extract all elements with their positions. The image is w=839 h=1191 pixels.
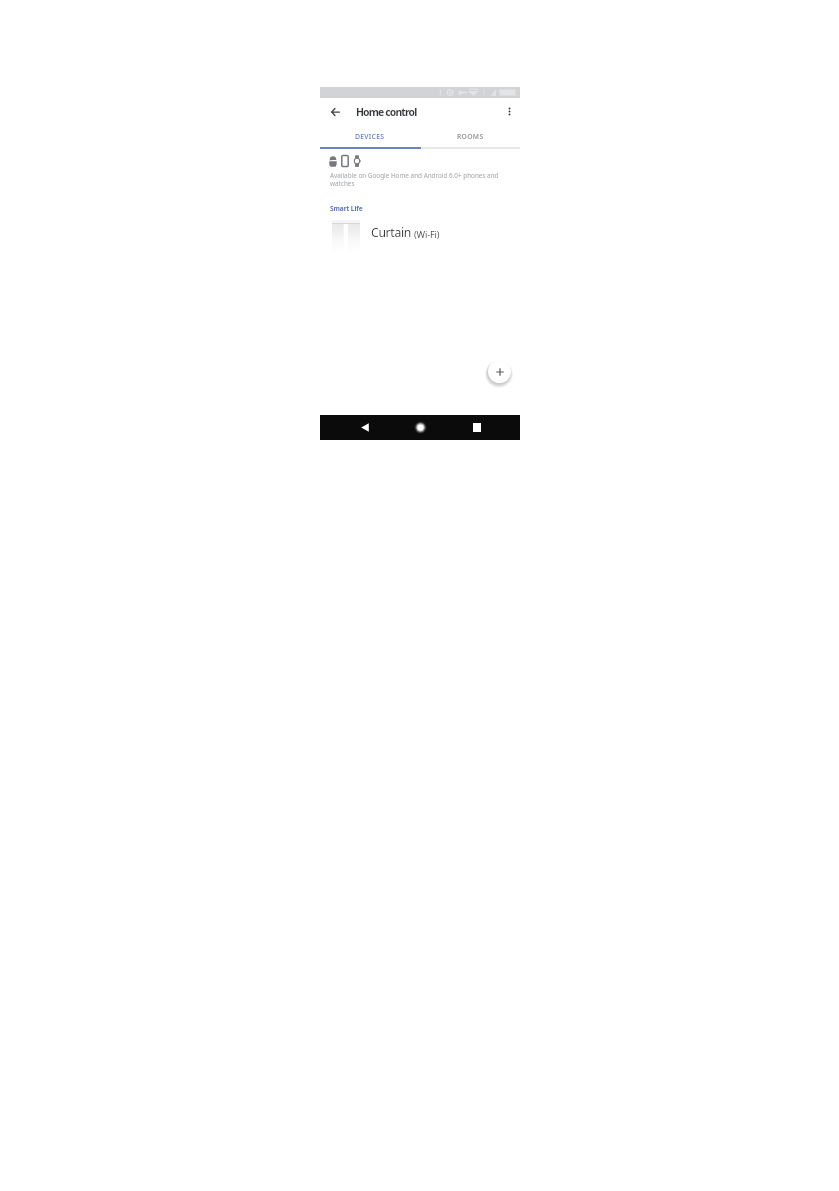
staticText: Home control — [356, 105, 417, 119]
button[interactable]: More options — [501, 103, 518, 120]
button[interactable]: Back — [352, 418, 378, 437]
staticText: DEVICES — [355, 132, 385, 141]
button[interactable]: ROOMS — [420, 127, 520, 145]
button[interactable]: DEVICES — [320, 127, 420, 145]
button[interactable]: Back — [327, 103, 344, 120]
button[interactable]: Curtain — [320, 216, 520, 252]
button[interactable]: Add device — [488, 360, 511, 383]
staticText: Available on Google Home and Android 6.0… — [330, 171, 508, 188]
button[interactable]: Home — [407, 418, 434, 437]
staticText: Smart Life — [330, 204, 363, 213]
button[interactable]: Recents — [463, 418, 490, 437]
staticText: Curtain — [371, 224, 411, 241]
staticText: ROOMS — [457, 132, 484, 141]
staticText: (Wi-Fi) — [414, 228, 440, 241]
